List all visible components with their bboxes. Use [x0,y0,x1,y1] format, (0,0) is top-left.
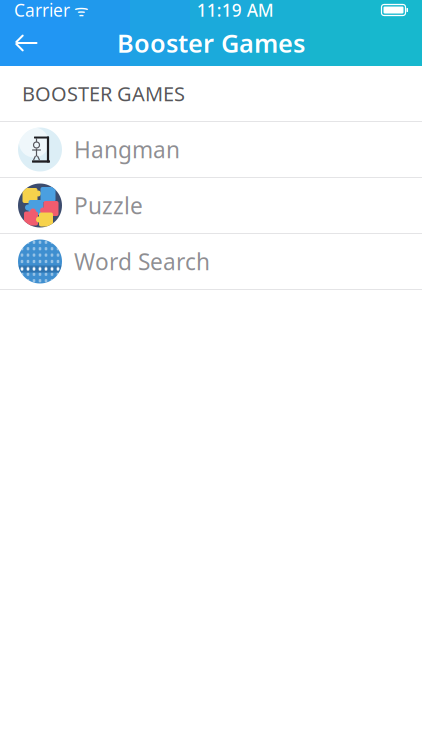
staticText: Hangman [74,134,180,164]
button[interactable]: Hangman [0,122,422,177]
button[interactable]: Puzzle [0,178,422,233]
staticText: ᯤ [70,0,89,21]
button[interactable]: Back [0,20,54,66]
staticText: Carrier [14,0,70,21]
staticText: BOOSTER GAMES [22,80,185,107]
button[interactable]: Word Search [0,234,422,289]
staticText: Word Search [74,246,210,276]
staticText: 11:19 AM [197,0,274,21]
staticText: Puzzle [74,190,143,220]
staticText: Booster Games [117,26,305,60]
